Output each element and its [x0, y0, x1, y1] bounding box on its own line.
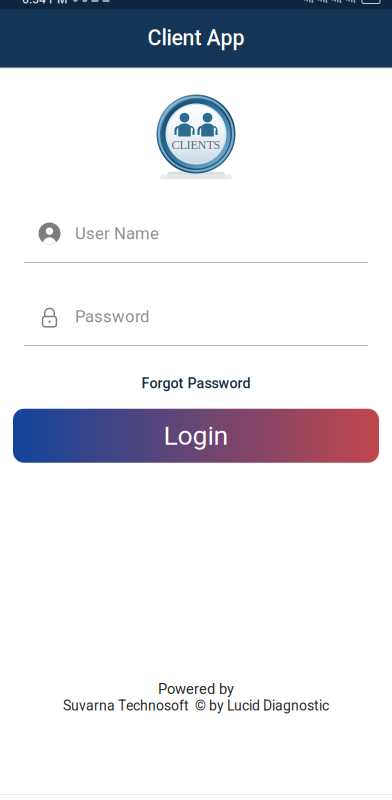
staticText: 6:54 PM — [22, 0, 67, 6]
staticText: Password — [75, 307, 149, 326]
staticText: Powered by — [158, 680, 234, 698]
staticText: Suvarna Technosoft © by Lucid Diagnostic — [63, 698, 329, 714]
button[interactable]: Login — [13, 409, 379, 463]
staticText: Client App — [147, 25, 244, 50]
staticText: User Name — [75, 224, 159, 243]
staticText: CLIENTS — [171, 138, 220, 152]
staticText: Login — [163, 420, 228, 451]
button[interactable]: Forgot Password — [133, 371, 258, 396]
staticText: Forgot Password — [141, 375, 250, 392]
